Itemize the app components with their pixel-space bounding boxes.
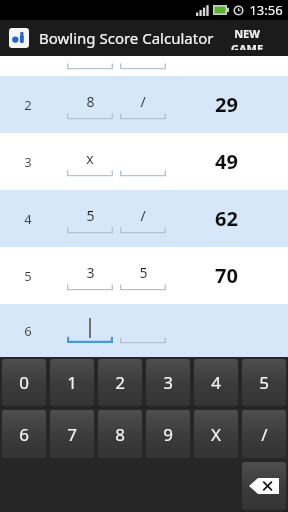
button[interactable]: 7 (50, 410, 94, 458)
staticText: 13:56 (249, 1, 283, 19)
button[interactable]: 4 (0, 190, 288, 247)
button[interactable]: 1 (50, 359, 94, 406)
staticText: 49 (215, 148, 238, 175)
staticText: 5 (24, 267, 32, 285)
button[interactable] (0, 56, 288, 76)
button[interactable]: / (242, 410, 286, 458)
staticText: 9 (163, 423, 173, 446)
staticText: 62 (215, 205, 238, 232)
staticText: 8 (115, 423, 125, 446)
button[interactable]: 5 (242, 359, 286, 406)
button[interactable]: 6 (2, 410, 46, 458)
button[interactable]: Backspace (242, 462, 286, 510)
staticText: 2 (24, 96, 32, 114)
staticText: 29 (215, 91, 238, 118)
button[interactable]: 6 (0, 304, 288, 357)
staticText: Bowling Score Calculator (39, 28, 214, 48)
staticText: / (261, 423, 268, 446)
button[interactable]: 3 (146, 359, 190, 406)
staticText: 8 (86, 92, 95, 111)
staticText: 3 (86, 263, 95, 282)
staticText: 5 (139, 263, 148, 282)
staticText: 3 (24, 153, 32, 171)
staticText: X (211, 423, 221, 446)
staticText: 5 (259, 371, 269, 394)
button[interactable]: 8 (98, 410, 142, 458)
staticText: 4 (211, 371, 221, 394)
staticText: 6 (24, 322, 32, 340)
button[interactable]: X (194, 410, 238, 458)
staticText: 3 (163, 371, 173, 394)
staticText: 7 (67, 423, 77, 446)
staticText: x (86, 149, 94, 168)
button[interactable]: 2 (98, 359, 142, 406)
button[interactable]: 9 (146, 410, 190, 458)
staticText: 5 (86, 206, 95, 225)
button[interactable]: 3 (0, 133, 288, 190)
button[interactable]: 2 (0, 76, 288, 133)
staticText: / (140, 206, 146, 225)
button[interactable]: 4 (194, 359, 238, 406)
button[interactable]: NEW GAME (214, 20, 280, 56)
staticText: NEW GAME (218, 26, 276, 50)
staticText: 70 (215, 262, 238, 289)
staticText: 1 (67, 371, 77, 394)
staticText: 2 (115, 371, 125, 394)
staticText: 4 (24, 210, 32, 228)
staticText: 0 (19, 371, 29, 394)
staticText: 6 (19, 423, 29, 446)
button[interactable]: 5 (0, 247, 288, 304)
staticText: / (140, 92, 146, 111)
button[interactable]: 0 (2, 359, 46, 406)
